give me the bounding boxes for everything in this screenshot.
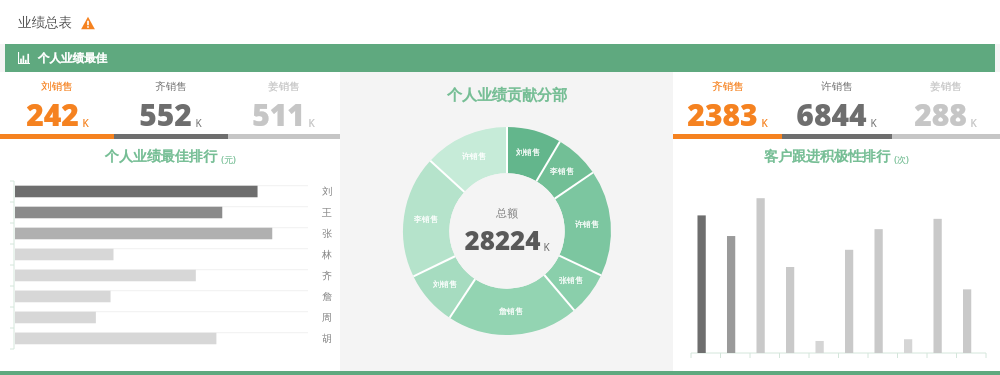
staticText: 姜销售 xyxy=(268,80,300,93)
staticText: K xyxy=(970,116,977,130)
staticText: (次) xyxy=(894,153,909,165)
staticText: 张销售 xyxy=(559,275,583,285)
staticText: 姜销售 xyxy=(930,80,962,93)
staticText: 28224 xyxy=(464,222,541,257)
staticText: 511 xyxy=(252,94,305,134)
button[interactable]: 刘销售 xyxy=(403,127,611,335)
button[interactable]: 姜销售 xyxy=(227,80,340,134)
staticText: 总额 xyxy=(496,206,518,220)
button[interactable] xyxy=(691,181,986,353)
staticText: 李销售 xyxy=(414,214,438,224)
button[interactable]: 个人业绩最佳 xyxy=(5,44,995,72)
button[interactable]: 齐销售 xyxy=(673,80,782,134)
staticText: 刘销售 xyxy=(41,80,73,93)
staticText: 2383 xyxy=(687,94,758,134)
staticText: 周 xyxy=(322,311,332,324)
staticText: 个人业绩贡献分部 xyxy=(447,86,567,105)
button[interactable]: 许销售 xyxy=(782,80,891,134)
button[interactable]: Warning xyxy=(80,15,96,31)
button[interactable]: 姜销售 xyxy=(891,80,1000,134)
staticText: 242 xyxy=(26,94,79,134)
staticText: K xyxy=(308,116,315,130)
staticText: 刘 xyxy=(322,185,332,198)
staticText: 齐 xyxy=(322,269,332,282)
staticText: 李销售 xyxy=(550,166,574,176)
staticText: 个人业绩最佳 xyxy=(38,51,107,65)
staticText: 业绩总表 xyxy=(18,14,72,31)
staticText: 许销售 xyxy=(575,219,599,229)
staticText: 张 xyxy=(322,227,332,240)
staticText: K xyxy=(543,240,550,254)
staticText: 许销售 xyxy=(462,151,486,161)
staticText: 刘销售 xyxy=(433,279,457,289)
staticText: K xyxy=(761,116,768,130)
staticText: 288 xyxy=(914,94,967,134)
staticText: 胡 xyxy=(322,332,332,345)
staticText: 552 xyxy=(139,94,192,134)
staticText: 齐销售 xyxy=(712,80,744,93)
staticText: (元) xyxy=(221,153,236,165)
staticText: 林 xyxy=(322,248,332,261)
staticText: 刘销售 xyxy=(516,147,540,157)
staticText: 6844 xyxy=(796,94,867,134)
staticText: 客户跟进积极性排行 xyxy=(764,148,890,166)
button[interactable]: 齐销售 xyxy=(114,80,227,134)
staticText: K xyxy=(870,116,877,130)
staticText: 许销售 xyxy=(821,80,853,93)
staticText: K xyxy=(82,116,89,130)
staticText: 王 xyxy=(322,206,332,219)
button[interactable] xyxy=(14,181,308,349)
button[interactable]: 刘销售 xyxy=(0,80,114,134)
staticText: 詹 xyxy=(322,290,332,303)
staticText: 詹销售 xyxy=(499,306,523,316)
staticText: K xyxy=(195,116,202,130)
staticText: 个人业绩最佳排行 xyxy=(105,148,217,166)
staticText: 齐销售 xyxy=(155,80,187,93)
